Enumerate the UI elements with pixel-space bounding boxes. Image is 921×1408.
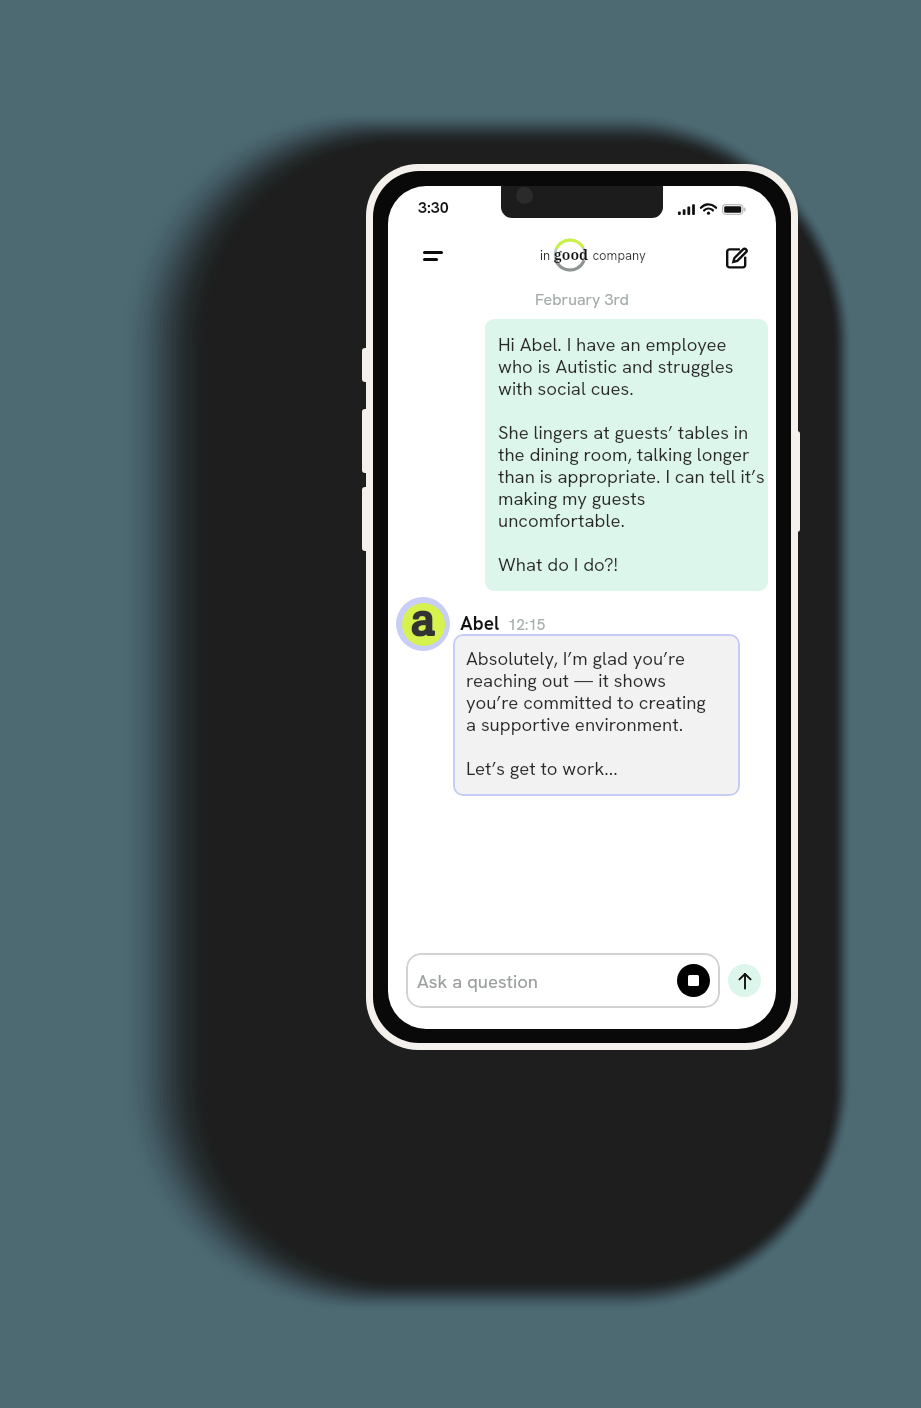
staticText: good <box>554 245 589 264</box>
button[interactable]: Ask a question <box>406 953 720 1008</box>
staticText: in <box>540 247 554 264</box>
button[interactable]: New chat <box>715 237 757 279</box>
staticText: 3:30 <box>418 197 449 218</box>
staticText: Ask a question <box>417 969 538 993</box>
staticText: Abel <box>460 611 500 636</box>
staticText: 12:15 <box>508 615 546 635</box>
button[interactable]: Hi Abel. I have an employee who is Autis… <box>485 319 768 591</box>
staticText: Absolutely, I’m glad you’re reaching out… <box>466 646 706 781</box>
button[interactable]: Stop <box>677 964 710 997</box>
staticText: a <box>410 597 435 643</box>
button[interactable]: Menu <box>412 235 454 277</box>
button[interactable]: Absolutely, I’m glad you’re reaching out… <box>453 634 740 796</box>
button[interactable]: Send <box>728 964 761 997</box>
staticText: company <box>589 247 646 264</box>
staticText: February 3rd <box>388 289 776 310</box>
staticText: Hi Abel. I have an employee who is Autis… <box>498 332 765 577</box>
